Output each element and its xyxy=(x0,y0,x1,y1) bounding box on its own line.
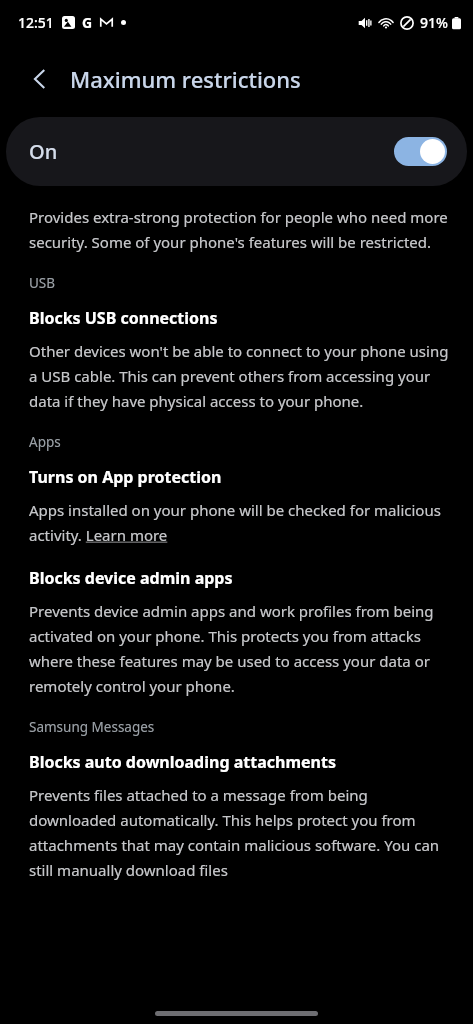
staticText: Provides extra-strong protection for peo… xyxy=(29,207,451,252)
staticText: Samsung Messages xyxy=(29,718,155,736)
button[interactable]: On xyxy=(6,117,467,186)
staticText: Turns on App protection xyxy=(29,466,222,488)
staticText: 12:51 xyxy=(18,13,54,32)
staticText: Prevents files attached to a message fro… xyxy=(29,785,451,880)
staticText: Prevents device admin apps and work prof… xyxy=(29,601,451,696)
staticText: Apps installed on your phone will be che… xyxy=(29,500,451,545)
staticText: G xyxy=(82,13,93,32)
staticText: Blocks device admin apps xyxy=(29,567,233,589)
staticText: 91% xyxy=(420,13,448,32)
staticText: Blocks auto downloading attachments xyxy=(29,751,336,773)
staticText: USB xyxy=(29,274,56,292)
button[interactable]: Back xyxy=(16,55,64,103)
staticText: Apps xyxy=(29,433,61,451)
staticText: Maximum restrictions xyxy=(70,64,301,94)
staticText: On xyxy=(29,138,58,165)
staticText: Blocks USB connections xyxy=(29,307,218,329)
staticText: Other devices won't be able to connect t… xyxy=(29,341,451,411)
button[interactable]: Apps installed on your phone will be che… xyxy=(29,500,451,545)
